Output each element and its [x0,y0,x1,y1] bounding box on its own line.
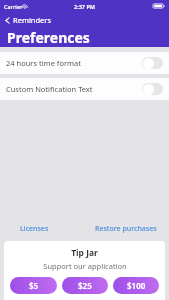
button[interactable]: $25 [62,277,108,294]
button[interactable]: $100 [113,277,159,294]
staticText: Licenses [20,224,49,234]
staticText: $25 [78,280,92,291]
button[interactable]: Toggle [142,83,163,95]
staticText: Preferences [7,28,90,46]
staticText: Reminders [13,15,52,25]
button[interactable]: Restore purchases [93,221,159,237]
staticText: 24 hours time format [6,58,81,68]
staticText: Support our application [43,261,127,271]
button[interactable]: Licenses [10,221,59,237]
staticText: $5 [29,280,39,291]
staticText: Tip Jar [71,247,98,259]
button[interactable]: Toggle [142,57,163,69]
staticText: Carrier [4,3,23,10]
button[interactable]: Back [0,12,169,28]
staticText: 2:37 PM [74,3,95,10]
button[interactable]: $5 [10,277,57,294]
other: Back [4,17,11,24]
button[interactable]: Custom Notification Text [0,78,169,100]
staticText: Restore purchases [95,224,157,234]
staticText: Custom Notification Text [6,84,93,94]
staticText: $100 [127,280,146,291]
button[interactable]: 24 hours time format [0,52,169,74]
